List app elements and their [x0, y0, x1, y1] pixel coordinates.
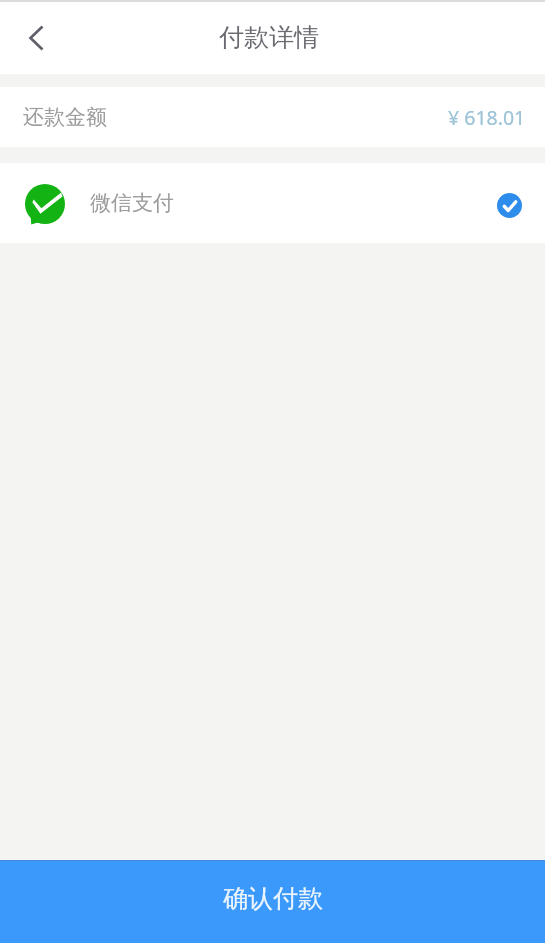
- staticText: 微信支付: [90, 190, 174, 216]
- staticText: 付款详情: [219, 22, 319, 53]
- staticText: 确认付款: [223, 883, 323, 914]
- staticText: 还款金额: [23, 104, 107, 130]
- staticText: ¥ 618.01: [448, 104, 526, 131]
- button[interactable]: Back: [13, 15, 57, 59]
- button[interactable]: 微信支付: [0, 163, 545, 243]
- button[interactable]: 确认付款: [0, 860, 545, 943]
